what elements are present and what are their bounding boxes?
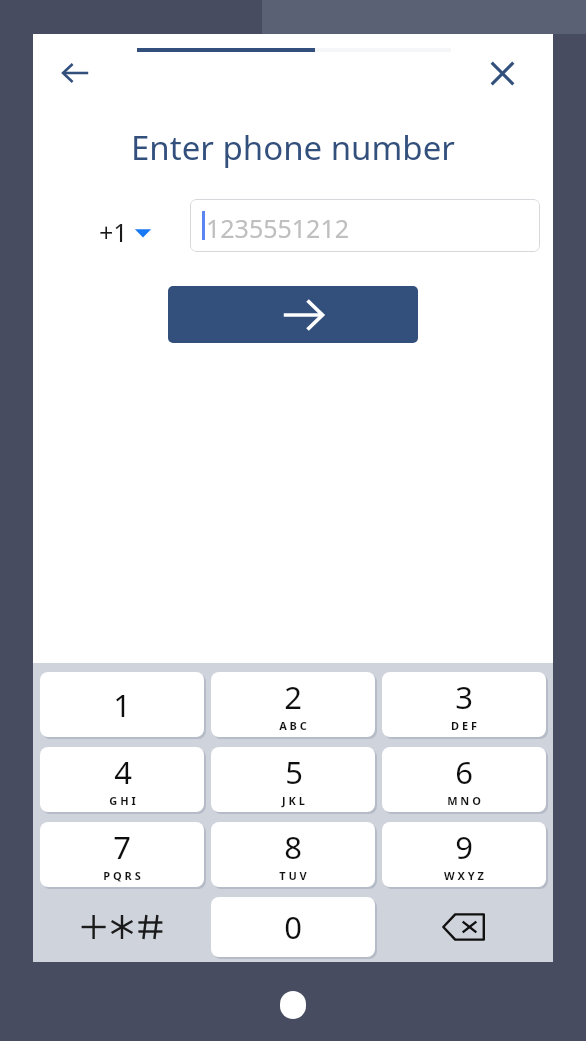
staticText: M N O (447, 793, 481, 808)
staticText: 4 (114, 751, 132, 793)
staticText: D E F (451, 718, 477, 733)
staticText: 0 (284, 906, 302, 948)
staticText: 6 (455, 751, 473, 793)
staticText: T U V (279, 868, 307, 883)
staticText: 9 (455, 826, 473, 868)
staticText: Enter phone number (131, 125, 455, 170)
button[interactable]: 2 (211, 672, 375, 737)
staticText: 1 (113, 684, 131, 726)
staticText: 2 (284, 676, 302, 718)
button[interactable]: Country code (99, 210, 152, 254)
button[interactable]: 4 (40, 747, 204, 812)
button[interactable]: Symbols (40, 897, 204, 957)
button[interactable]: 3 (382, 672, 546, 737)
staticText: J K L (282, 793, 305, 808)
button[interactable]: 6 (382, 747, 546, 812)
staticText: 3 (455, 676, 473, 718)
button[interactable]: Home (280, 991, 306, 1019)
button[interactable]: 8 (211, 822, 375, 887)
staticText: W X Y Z (444, 868, 484, 883)
staticText: P Q R S (103, 868, 141, 883)
button[interactable]: 5 (211, 747, 375, 812)
button[interactable]: 1 (40, 672, 204, 737)
button[interactable]: Continue (168, 286, 418, 343)
staticText: 1235551212 (206, 211, 350, 245)
button[interactable]: Back (50, 48, 100, 98)
staticText: A B C (279, 718, 307, 733)
button[interactable]: Close (477, 48, 527, 98)
staticText: 7 (113, 826, 131, 868)
button[interactable]: 9 (382, 822, 546, 887)
staticText: G H I (109, 793, 136, 808)
staticText: +1 (99, 215, 128, 249)
button[interactable]: 0 (211, 897, 375, 957)
staticText: 8 (284, 826, 302, 868)
staticText: 5 (285, 751, 303, 793)
button[interactable]: 1235551212 (190, 199, 540, 252)
button[interactable]: 7 (40, 822, 204, 887)
button[interactable]: Backspace (382, 897, 546, 957)
